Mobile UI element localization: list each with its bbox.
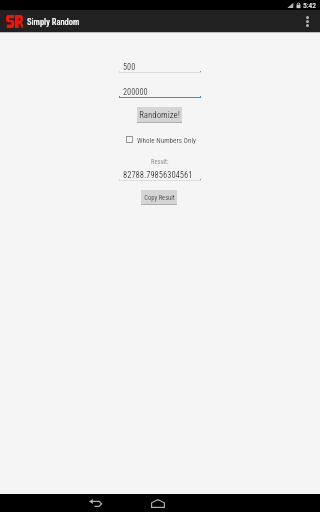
button[interactable]: More options xyxy=(296,10,318,32)
button[interactable]: 200000 xyxy=(119,86,201,98)
staticText: Result: xyxy=(151,158,169,166)
button[interactable]: Copy Result xyxy=(141,190,177,205)
button[interactable]: Randomize! xyxy=(137,107,182,123)
staticText: 5:42 xyxy=(303,1,316,10)
staticText: 200000 xyxy=(123,87,148,97)
button[interactable]: Back xyxy=(85,494,105,512)
staticText: Simply Random xyxy=(27,17,80,27)
button[interactable]: Whole Numbers Only xyxy=(126,135,206,144)
staticText: Randomize! xyxy=(139,110,180,120)
staticText: 82788.79856304561 xyxy=(123,170,193,180)
button[interactable]: 82788.79856304561 xyxy=(119,169,201,181)
staticText: Whole Numbers Only xyxy=(137,136,197,144)
staticText: 500 xyxy=(123,62,136,72)
button[interactable]: 500 xyxy=(119,61,201,73)
staticText: Copy Result xyxy=(144,194,175,202)
button[interactable]: Home xyxy=(148,494,168,512)
